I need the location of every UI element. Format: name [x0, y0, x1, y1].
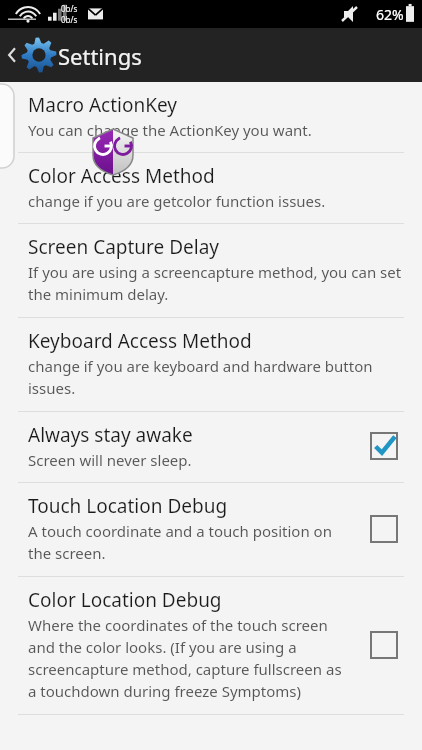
staticText: Macro ActionKey — [28, 92, 177, 118]
button[interactable]: Color Location Debug — [0, 577, 422, 714]
staticText: 62% — [376, 5, 404, 24]
button[interactable]: GameGuardian overlay — [88, 126, 138, 176]
staticText: change if you are getcolor function issu… — [28, 191, 326, 211]
button[interactable]: Macro ActionKey — [0, 82, 422, 152]
button[interactable]: Touch Location Debug checkbox — [362, 507, 406, 551]
button[interactable]: Color Access Method — [0, 153, 422, 223]
button[interactable]: Always stay awake — [0, 412, 422, 482]
staticText: change if you are keyboard and hardware … — [28, 356, 406, 399]
button[interactable]: Always stay awake checkbox — [362, 424, 406, 468]
staticText: Color Access Method — [28, 163, 215, 189]
staticText: A touch coordinate and a touch position … — [28, 521, 350, 564]
staticText: You can change the ActionKey you want. — [28, 120, 312, 140]
staticText: 0b/s — [61, 3, 78, 14]
button[interactable]: Keyboard Access Method — [0, 318, 422, 411]
button[interactable]: Touch Location Debug — [0, 483, 422, 576]
button[interactable]: Screen Capture Delay — [0, 224, 422, 317]
staticText: 0b/s — [61, 14, 78, 25]
staticText: Settings — [58, 41, 142, 71]
staticText: Where the coordinates of the touch scree… — [28, 615, 350, 702]
button[interactable]: Color Location Debug checkbox — [362, 623, 406, 667]
staticText: Screen Capture Delay — [28, 234, 220, 260]
staticText: Color Location Debug — [28, 587, 222, 613]
staticText: Keyboard Access Method — [28, 328, 252, 354]
staticText: Touch Location Debug — [28, 493, 228, 519]
staticText: Screen will never sleep. — [28, 450, 192, 470]
button[interactable]: Navigate up — [0, 28, 64, 82]
staticText: If you are using a screencapture method,… — [28, 262, 406, 305]
staticText: Always stay awake — [28, 422, 193, 448]
